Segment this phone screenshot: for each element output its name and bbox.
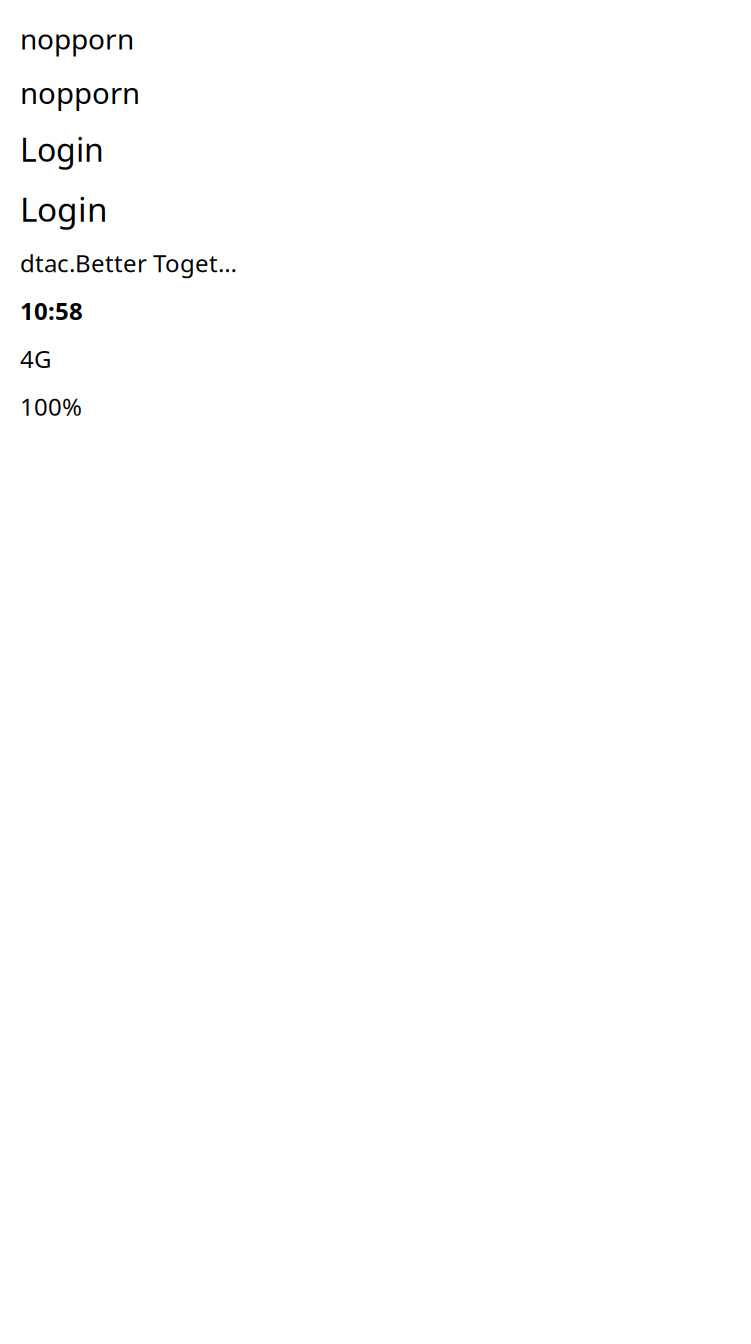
staticText: dtac.Better Toget… (20, 247, 237, 279)
staticText: nopporn (20, 73, 140, 112)
staticText: 100% (20, 390, 82, 422)
staticText: 4G (20, 343, 51, 374)
staticText: Login (20, 128, 104, 171)
staticText: Login (20, 187, 108, 231)
staticText: nopporn (20, 20, 134, 57)
staticText: 10:58 (20, 295, 83, 327)
